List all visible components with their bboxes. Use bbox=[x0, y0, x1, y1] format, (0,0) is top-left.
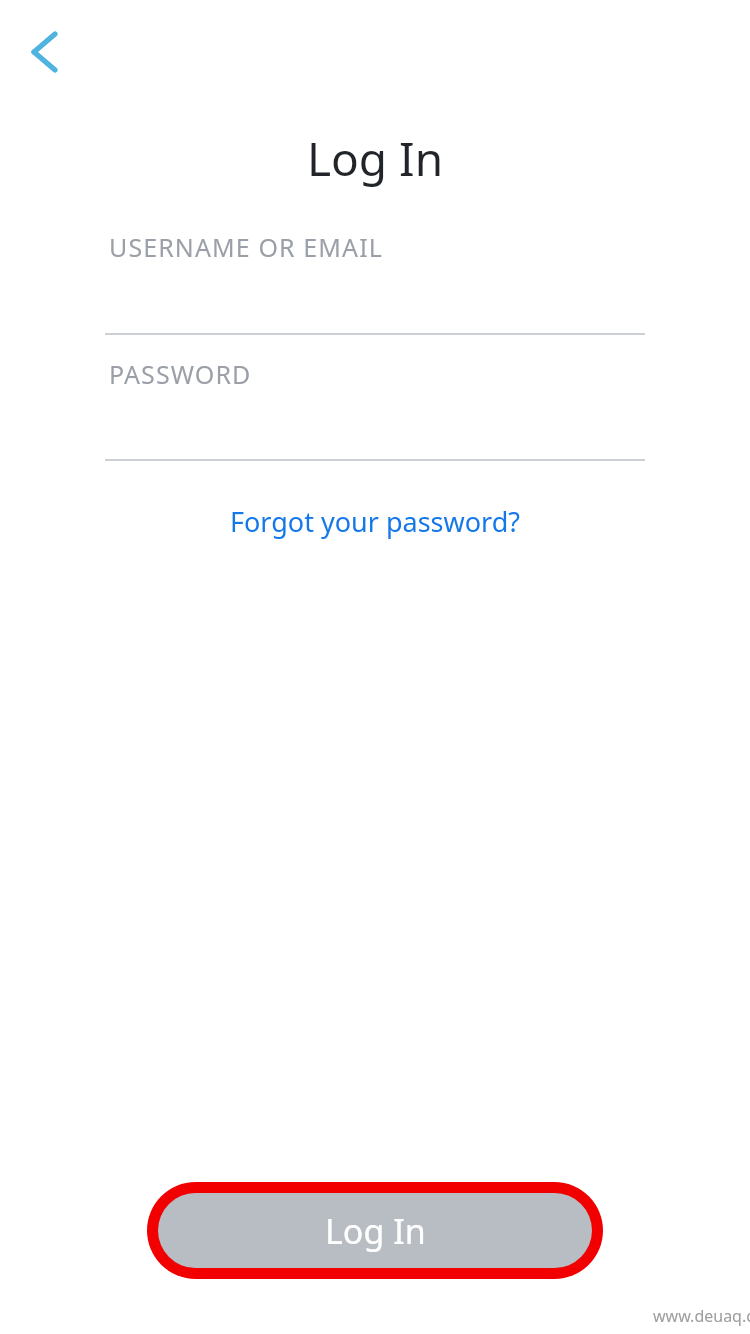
staticText: PASSWORD bbox=[109, 357, 252, 391]
button[interactable]: Username or email field bbox=[105, 270, 645, 334]
staticText: Forgot your password? bbox=[230, 503, 521, 540]
button[interactable]: Forgot your password? bbox=[220, 497, 531, 546]
button[interactable]: Log In bbox=[147, 1182, 603, 1279]
button[interactable]: Back bbox=[8, 16, 80, 88]
staticText: Log In bbox=[325, 1208, 426, 1254]
staticText: Log In bbox=[0, 127, 750, 190]
staticText: USERNAME OR EMAIL bbox=[109, 230, 383, 264]
staticText: www.deuaq.com bbox=[653, 1305, 750, 1327]
